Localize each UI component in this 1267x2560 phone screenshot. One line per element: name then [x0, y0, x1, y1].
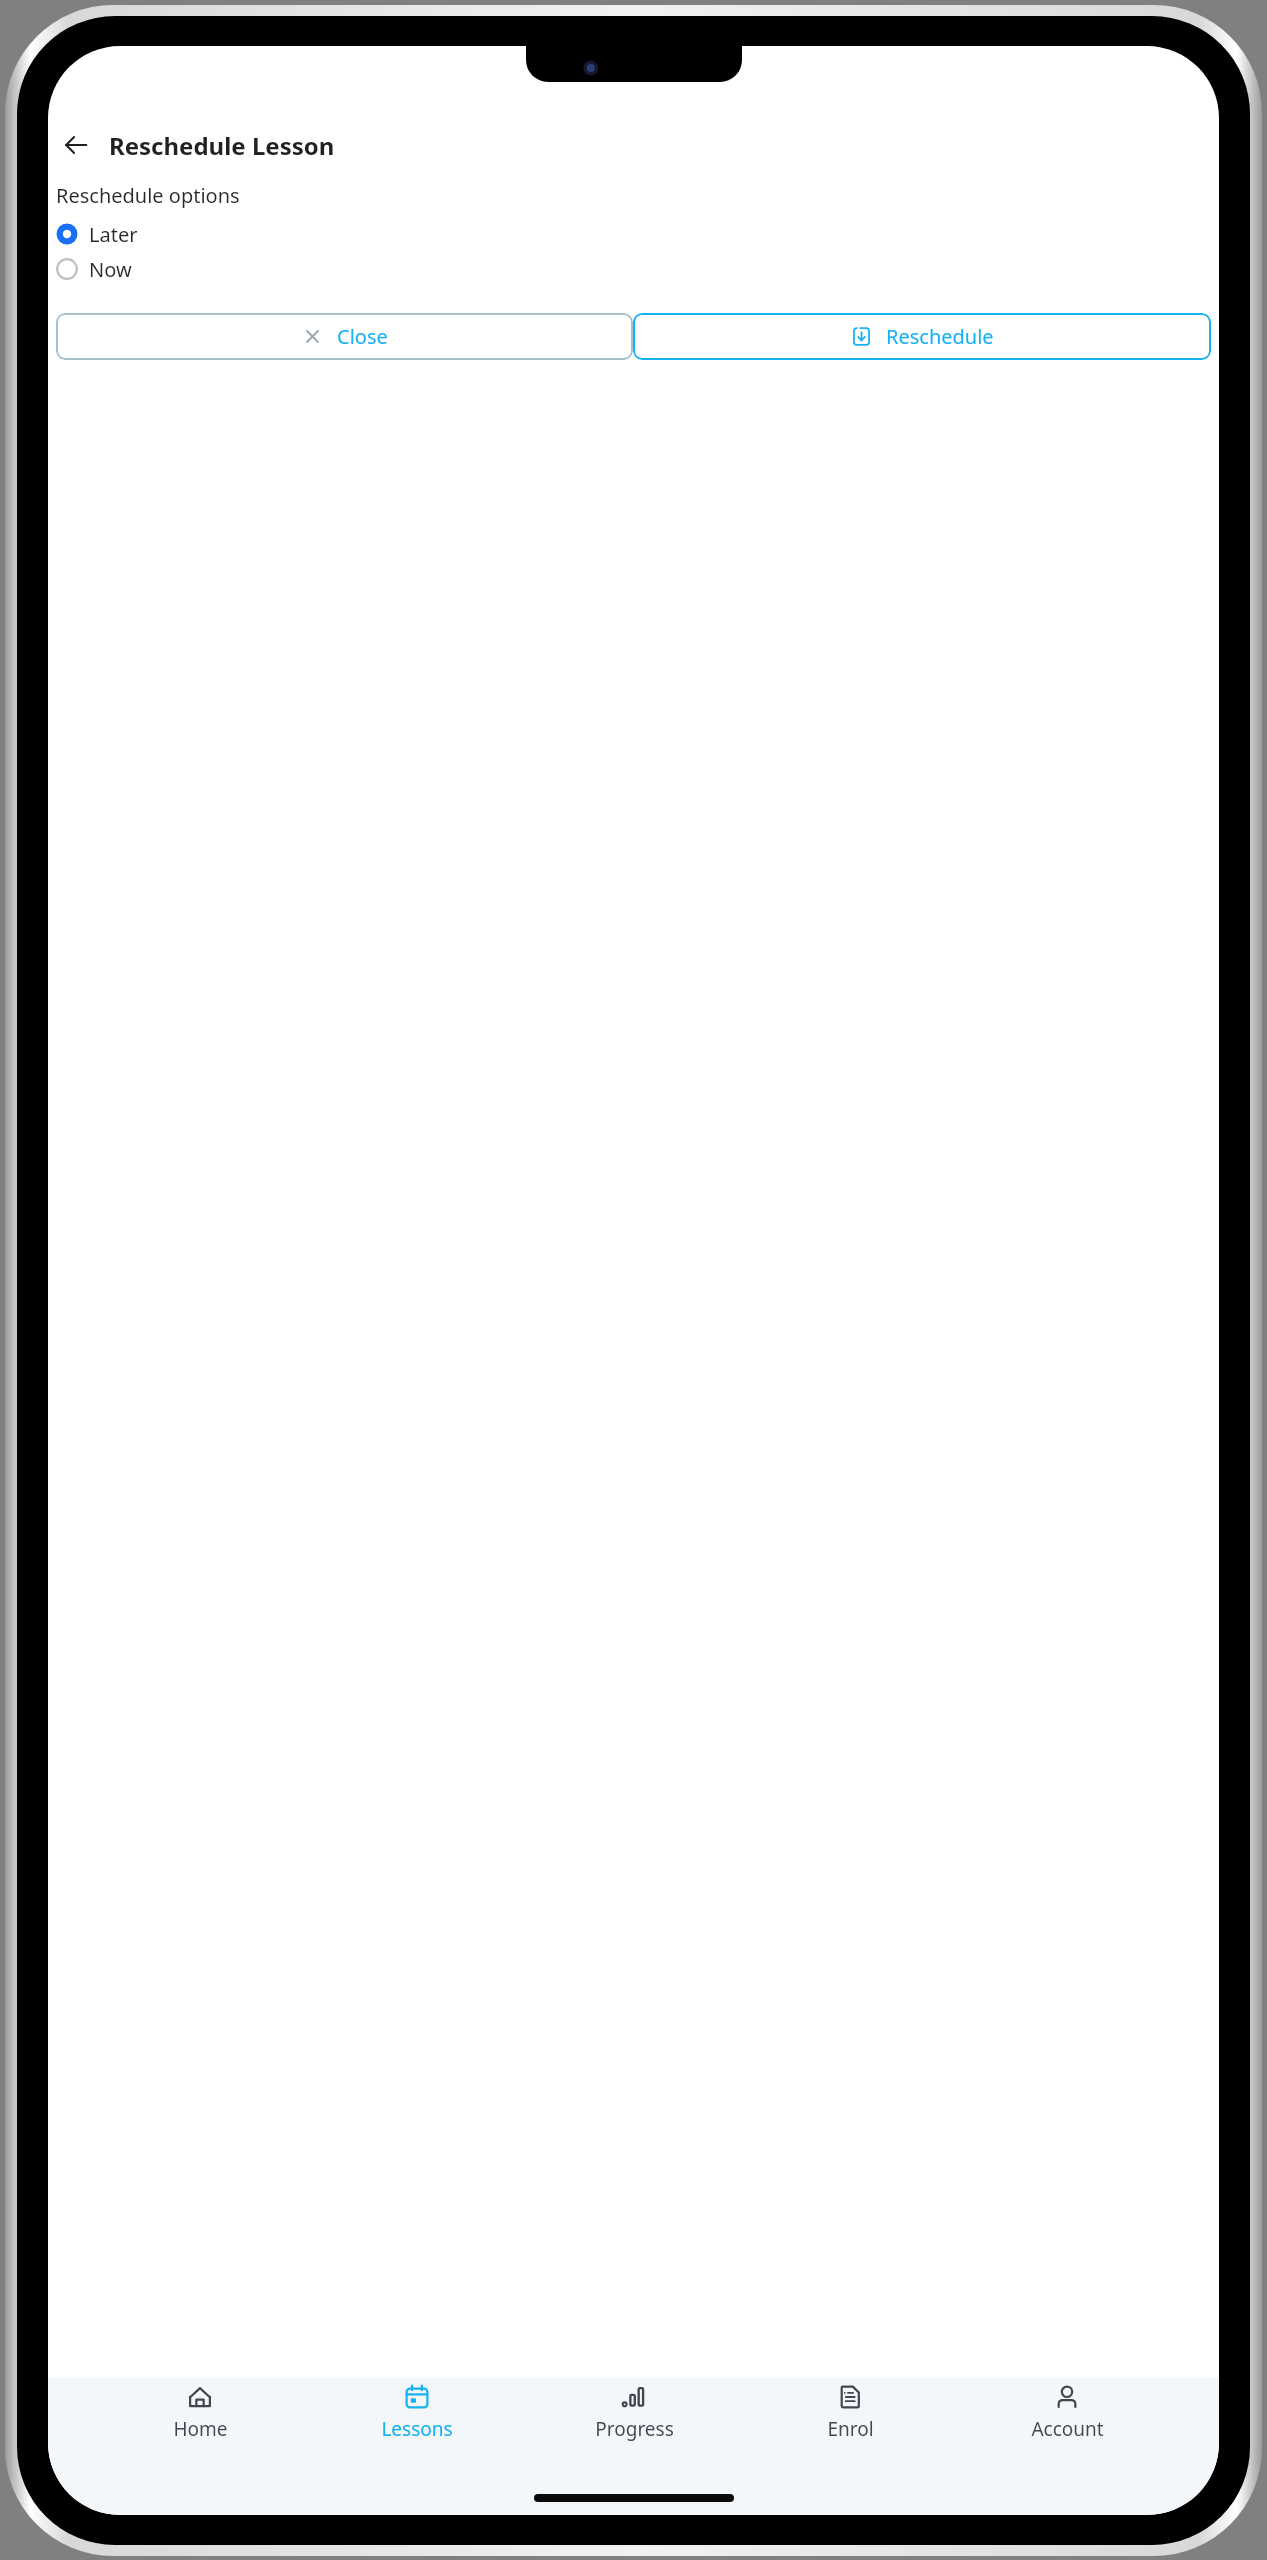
staticText: Now: [89, 256, 132, 283]
button[interactable]: Reschedule: [633, 313, 1211, 360]
staticText: Close: [337, 323, 388, 350]
staticText: Later: [89, 221, 138, 248]
button[interactable]: Later: [48, 218, 1219, 250]
button[interactable]: Now: [48, 253, 1219, 285]
staticText: Lessons: [381, 2416, 453, 2442]
staticText: Account: [1031, 2416, 1104, 2442]
button[interactable]: Close: [56, 313, 633, 360]
staticText: Reschedule: [886, 323, 994, 350]
button[interactable]: Back: [56, 125, 96, 165]
button[interactable]: Enrol: [785, 2378, 915, 2474]
staticText: Reschedule options: [56, 182, 240, 209]
button[interactable]: Progress: [569, 2378, 699, 2474]
button[interactable]: Account: [1002, 2378, 1132, 2474]
staticText: Enrol: [827, 2416, 874, 2442]
button[interactable]: Lessons: [352, 2378, 482, 2474]
staticText: Home: [173, 2416, 228, 2442]
staticText: Progress: [595, 2416, 674, 2442]
button[interactable]: Back: [48, 123, 1219, 167]
button[interactable]: Home: [135, 2378, 265, 2474]
staticText: Reschedule Lesson: [109, 129, 335, 162]
